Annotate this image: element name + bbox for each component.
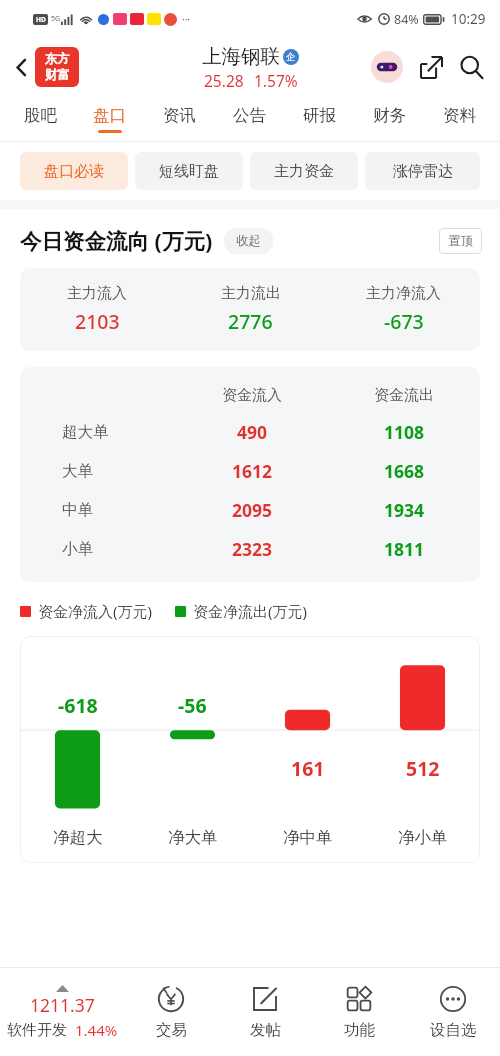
button[interactable]: Search [452,48,490,86]
button[interactable]: 1211.37 [0,985,124,1040]
staticText: 1612 [232,459,273,483]
staticText: 交易 [156,1020,187,1040]
staticText: 主力流入 [67,284,127,303]
button[interactable]: 财务 [354,96,424,141]
staticText: 84% [394,11,419,28]
staticText: 2103 [75,308,120,335]
button[interactable]: Back [4,50,38,84]
staticText: 企 [286,51,296,63]
staticText: 中单 [62,500,93,520]
button[interactable]: 短线盯盘 [135,152,243,190]
button[interactable]: Trade [124,985,218,1040]
staticText: ··· [182,12,191,26]
button[interactable]: 盘口必读 [20,152,128,190]
button[interactable]: 收起 [224,228,273,254]
staticText: 1.44% [75,1020,118,1040]
button[interactable]: 涨停雷达 [365,152,480,190]
staticText: 2095 [232,498,273,522]
staticText: -673 [384,308,424,335]
button[interactable]: 盘口 [75,96,144,141]
button[interactable]: Share [412,48,450,86]
staticText: 涨停雷达 [393,162,453,181]
staticText: 5G [51,14,61,24]
staticText: 25.28 [204,70,244,91]
staticText: 盘口 [93,105,126,126]
staticText: 设自选 [430,1020,477,1040]
staticText: 资金净流入(万元) [38,601,153,621]
button[interactable]: 公告 [214,96,284,141]
staticText: 大单 [62,461,93,481]
staticText: 主力净流入 [366,284,441,303]
staticText: 资料 [443,105,476,126]
staticText: 发帖 [250,1020,281,1040]
staticText: HD [36,15,46,24]
button[interactable]: Functions [312,985,406,1040]
button[interactable]: 主力资金 [250,152,358,190]
staticText: 161 [291,755,325,782]
staticText: 研报 [303,105,336,126]
staticText: 490 [237,420,268,444]
button[interactable]: East Money home [35,47,79,87]
staticText: 置顶 [448,233,473,249]
staticText: 功能 [344,1020,375,1040]
button[interactable]: 股吧 [6,96,75,141]
staticText: 软件开发 [7,1021,67,1040]
staticText: 公告 [233,105,266,126]
staticText: 上海钢联 [202,44,280,69]
staticText: 主力资金 [274,162,334,181]
staticText: 1668 [384,459,425,483]
staticText: 今日资金流向 (万元) [20,226,213,255]
staticText: 资金净流出(万元) [193,601,308,621]
staticText: 财务 [373,105,406,126]
staticText: 小单 [62,539,93,559]
button[interactable]: 资金流入 [20,367,480,582]
staticText: 超大单 [62,422,109,442]
staticText: 盘口必读 [44,162,104,181]
staticText: 资金流入 [222,386,282,405]
button[interactable]: 资讯 [144,96,214,141]
staticText: 收起 [236,233,261,249]
staticText: -618 [58,692,98,719]
button[interactable]: 置顶 [439,228,482,254]
staticText: 短线盯盘 [159,162,219,181]
staticText: 1211.37 [30,993,95,1017]
staticText: 东方 [45,51,70,67]
button[interactable]: AI assistant [368,48,406,86]
button[interactable]: 资料 [424,96,494,141]
staticText: 主力流出 [221,284,281,303]
staticText: 财富 [45,67,70,83]
staticText: 净中单 [283,827,333,848]
staticText: 股吧 [24,105,57,126]
button[interactable]: Post [218,985,312,1040]
staticText: 512 [406,755,440,782]
button[interactable]: -618 [20,636,480,863]
staticText: 10:29 [451,10,486,28]
button[interactable]: Watchlist [406,985,500,1040]
staticText: 1811 [384,537,425,561]
staticText: 净小单 [398,827,448,848]
staticText: 2323 [232,537,273,561]
staticText: 资金流出 [374,386,434,405]
staticText: 1934 [384,498,425,522]
staticText: 1108 [384,420,425,444]
button[interactable]: 研报 [284,96,354,141]
staticText: 1.57% [254,70,298,91]
staticText: -56 [178,692,207,719]
button[interactable]: 主力流入 [20,268,480,351]
staticText: 资讯 [163,105,196,126]
staticText: 净大单 [168,827,218,848]
staticText: 净超大 [53,827,103,848]
staticText: 2776 [228,308,273,335]
